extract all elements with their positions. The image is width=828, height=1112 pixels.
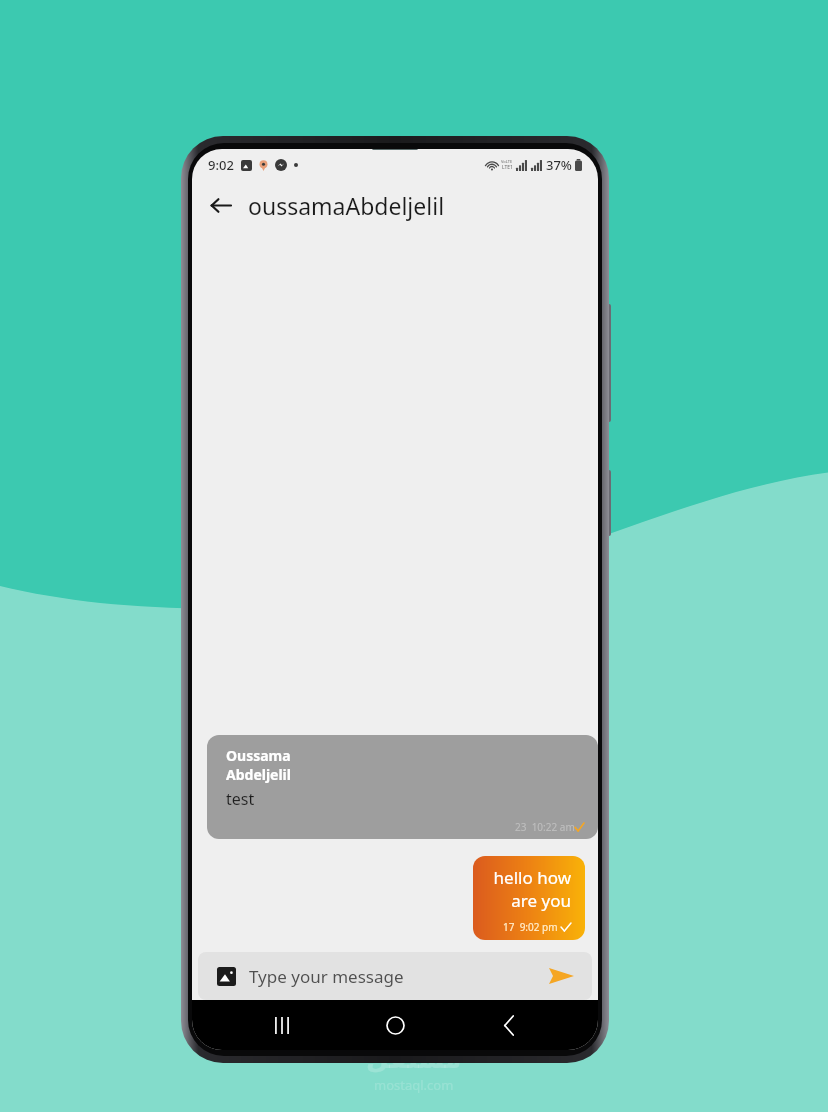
button[interactable]: Oussama xyxy=(207,735,598,839)
button[interactable]: Attach image xyxy=(198,952,592,1000)
button[interactable]: Back xyxy=(198,183,242,227)
staticText: mostaql.com xyxy=(374,1076,454,1094)
staticText: 17 9:02 pm xyxy=(503,920,558,934)
staticText: 9:02 xyxy=(208,156,234,174)
staticText: مستقل xyxy=(366,1044,462,1074)
staticText: are you xyxy=(511,889,571,912)
staticText: Oussama xyxy=(226,746,291,765)
button[interactable]: Home xyxy=(371,1001,419,1049)
staticText: test xyxy=(226,788,255,810)
staticText: hello how xyxy=(493,866,571,889)
button[interactable]: Back xyxy=(485,1001,533,1049)
button[interactable]: Send xyxy=(544,959,578,993)
staticText: Abdeljelil xyxy=(226,765,291,784)
staticText: 23 10:22 am xyxy=(515,820,575,834)
staticText: LTE1 xyxy=(502,164,513,171)
staticText: oussamaAbdeljelil xyxy=(248,190,445,221)
staticText: VoLTE xyxy=(501,159,513,164)
button[interactable]: hello how xyxy=(473,856,585,940)
button[interactable]: Recents xyxy=(258,1001,306,1049)
staticText: 37% xyxy=(546,156,572,174)
button[interactable]: Attach image xyxy=(212,962,240,990)
staticText: Type your message xyxy=(249,965,404,988)
